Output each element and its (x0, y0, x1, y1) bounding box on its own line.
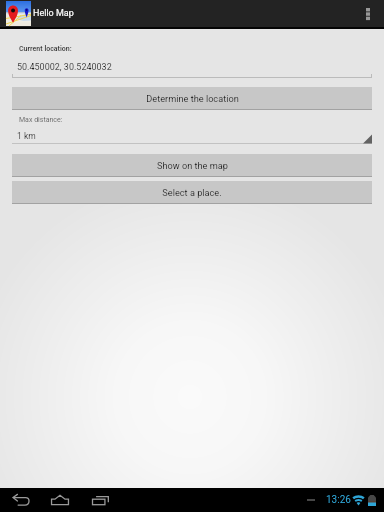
button[interactable]: Recent apps (85, 488, 115, 512)
staticText: 13:26 (326, 494, 351, 506)
staticText: 50.450002, 30.5240032 (17, 62, 112, 73)
staticText: 1 km (17, 131, 36, 141)
staticText: Show on the map (157, 160, 228, 171)
button[interactable]: 1 km (12, 129, 372, 144)
staticText: Max distance: (19, 116, 63, 124)
button[interactable]: Show on the map (12, 154, 372, 177)
button[interactable]: Home (45, 488, 75, 512)
staticText: Current location: (19, 45, 72, 53)
staticText: Select a place. (162, 187, 222, 198)
staticText: Hello Map (33, 8, 74, 19)
button[interactable]: More options (352, 0, 384, 28)
button[interactable]: Back (5, 488, 35, 512)
button[interactable]: Determine the location (12, 87, 372, 110)
button[interactable]: Select a place. (12, 181, 372, 204)
staticText: Determine the location (146, 93, 239, 104)
